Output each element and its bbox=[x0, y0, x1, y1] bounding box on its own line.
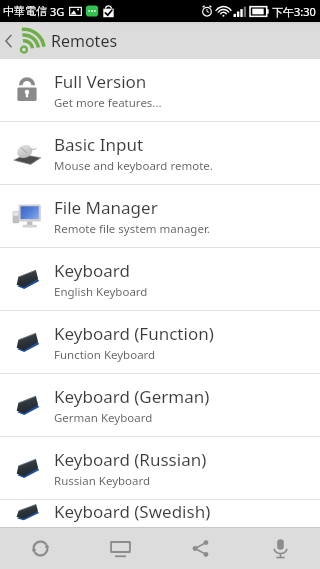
staticText: Full Version bbox=[54, 70, 147, 93]
staticText: Get more features... bbox=[54, 95, 162, 111]
button[interactable]: Keyboard (Russian) bbox=[0, 437, 320, 499]
button[interactable]: Basic Input bbox=[0, 122, 320, 184]
staticText: Mouse and keyboard remote. bbox=[54, 158, 213, 174]
button[interactable]: Keyboard (Swedish) bbox=[0, 500, 320, 524]
staticText: 中華電信 bbox=[3, 4, 47, 18]
staticText: Function Keyboard bbox=[54, 347, 156, 363]
staticText: Keyboard (Russian) bbox=[54, 448, 207, 471]
staticText: Keyboard bbox=[54, 259, 130, 282]
staticText: 3G bbox=[50, 4, 65, 19]
staticText: English Keyboard bbox=[54, 284, 148, 300]
staticText: File Manager bbox=[54, 196, 158, 219]
button[interactable]: Share bbox=[160, 528, 240, 569]
button[interactable]: Up, Remotes bbox=[0, 22, 320, 59]
staticText: Keyboard (Function) bbox=[54, 322, 214, 345]
button[interactable]: Screen bbox=[80, 528, 160, 569]
button[interactable]: Full Version bbox=[0, 59, 320, 121]
staticText: Remote file system manager. bbox=[54, 221, 210, 237]
staticText: Keyboard (German) bbox=[54, 385, 210, 408]
button[interactable]: Voice input bbox=[240, 528, 320, 569]
staticText: German Keyboard bbox=[54, 410, 153, 426]
button[interactable]: Keyboard (Function) bbox=[0, 311, 320, 373]
staticText: Keyboard (Swedish) bbox=[54, 500, 211, 523]
staticText: Remotes bbox=[51, 30, 118, 52]
button[interactable]: Keyboard (German) bbox=[0, 374, 320, 436]
staticText: Basic Input bbox=[54, 133, 144, 156]
button[interactable]: Keyboard bbox=[0, 248, 320, 310]
button[interactable]: Refresh bbox=[0, 528, 80, 569]
button[interactable]: File Manager bbox=[0, 185, 320, 247]
staticText: 下午3:30 bbox=[272, 4, 316, 19]
staticText: Russian Keyboard bbox=[54, 473, 151, 489]
